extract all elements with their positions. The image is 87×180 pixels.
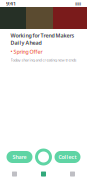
button[interactable]: Record [36, 150, 50, 164]
button[interactable]: Share [6, 151, 32, 163]
button[interactable]: Home [0, 171, 29, 176]
staticText: Collect [58, 153, 76, 161]
button[interactable]: Discover [29, 171, 58, 176]
button[interactable]: Collect [54, 151, 80, 163]
staticText: 9:41 [6, 0, 16, 7]
button[interactable]: Profile [58, 171, 87, 176]
staticText: • Spring Offer [10, 48, 42, 55]
staticText: ▮▮▮ [75, 1, 81, 6]
staticText: Share [12, 153, 26, 161]
staticText: Working for Trend Makers Daily Ahead [10, 32, 74, 46]
staticText: Today sharing and creating new trends [10, 57, 76, 62]
